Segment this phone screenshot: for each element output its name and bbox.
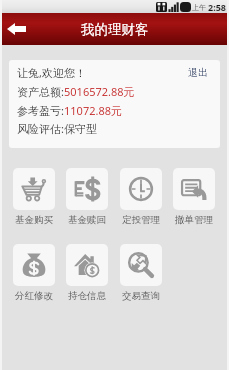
staticText: 2:58 (208, 1, 226, 13)
staticText: 定投管理 (122, 214, 160, 226)
staticText: 风险评估:保守型 (17, 121, 97, 136)
button[interactable]: 基金购买 (13, 168, 55, 226)
staticText: 持仓信息 (68, 290, 106, 302)
staticText: 交易查询 (122, 290, 160, 302)
button[interactable]: Back (3, 18, 29, 40)
button[interactable]: 撤单管理 (173, 168, 215, 226)
staticText: 基金赎回 (68, 214, 106, 226)
staticText: 5016572.88元 (64, 84, 135, 99)
staticText: 基金购买 (15, 214, 53, 226)
staticText: 资产总额: (17, 84, 64, 99)
button[interactable]: 退出 (188, 66, 208, 79)
staticText: 撤单管理 (175, 214, 213, 226)
button[interactable]: 交易查询 (120, 244, 162, 302)
staticText: 11072.88元 (64, 103, 122, 118)
staticText: 参考盈亏: (17, 103, 64, 118)
button[interactable]: 持仓信息 (66, 244, 108, 302)
button[interactable]: 分红修改 (13, 244, 55, 302)
button[interactable]: 定投管理 (120, 168, 162, 226)
button[interactable]: 基金赎回 (66, 168, 108, 226)
staticText: 让兔,欢迎您！ (17, 65, 86, 80)
staticText: 我的理财客 (81, 21, 149, 38)
staticText: 上午 (192, 3, 206, 12)
staticText: 分红修改 (15, 290, 53, 302)
